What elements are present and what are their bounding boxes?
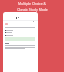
staticText: Classic Study Mode	[17, 7, 48, 12]
staticText: Multiple Choice &	[18, 1, 46, 6]
